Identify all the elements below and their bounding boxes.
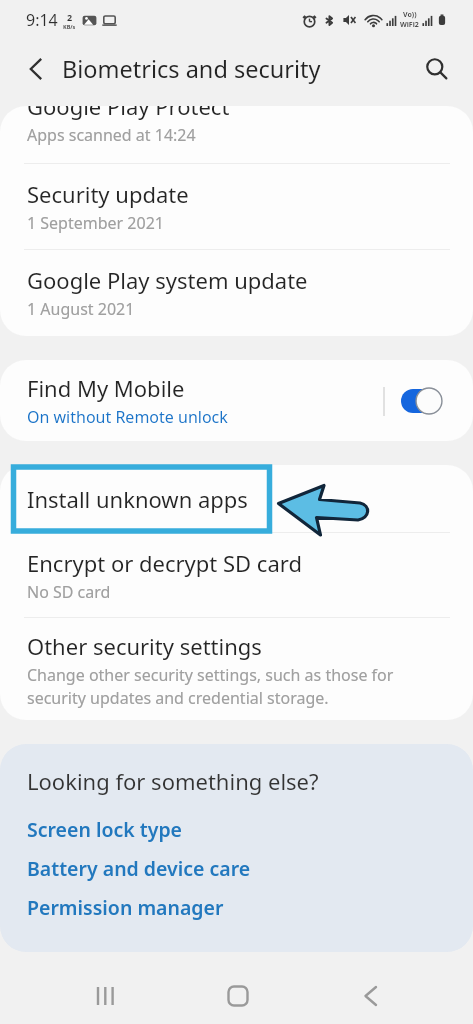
button[interactable]: Home: [205, 963, 270, 1024]
button[interactable]: Install unknown apps: [0, 465, 473, 532]
button[interactable]: Find My Mobile switch: [383, 378, 441, 424]
staticText: Encrypt or decrypt SD card: [27, 548, 302, 578]
staticText: 2: [67, 11, 73, 23]
button[interactable]: Battery and device care: [0, 849, 473, 888]
staticText: Security update: [27, 179, 189, 209]
staticText: Google Play system update: [27, 265, 308, 295]
staticText: KB/s: [63, 23, 76, 30]
button[interactable]: Google Play Protect: [0, 106, 473, 161]
button[interactable]: Search: [417, 49, 457, 89]
staticText: 1 August 2021: [27, 298, 135, 320]
staticText: Google Play Protect: [27, 106, 230, 121]
staticText: Change other security settings, such as …: [27, 664, 403, 709]
button[interactable]: Back: [338, 963, 403, 1024]
staticText: No SD card: [27, 581, 111, 603]
button[interactable]: Permission manager: [0, 888, 473, 927]
staticText: Biometrics and security: [62, 53, 321, 85]
staticText: 9:14: [26, 9, 58, 31]
staticText: 1 September 2021: [27, 212, 164, 234]
staticText: Vo)): [403, 10, 417, 20]
staticText: Other security settings: [27, 631, 262, 661]
button[interactable]: Google Play system update: [0, 248, 473, 336]
staticText: On without Remote unlock: [27, 406, 228, 428]
button[interactable]: Screen lock type: [0, 810, 473, 849]
staticText: Screen lock type: [27, 816, 183, 843]
staticText: Permission manager: [27, 894, 224, 921]
staticText: Looking for something else?: [27, 766, 319, 796]
staticText: Battery and device care: [27, 855, 251, 882]
staticText: Apps scanned at 14:24: [27, 124, 196, 146]
staticText: Find My Mobile: [27, 373, 185, 403]
button[interactable]: Security update: [0, 164, 473, 249]
button[interactable]: Other security settings: [0, 618, 473, 720]
staticText: WiFi2: [400, 20, 419, 30]
button[interactable]: Find My Mobile: [0, 360, 473, 441]
button[interactable]: Encrypt or decrypt SD card: [0, 533, 473, 617]
button[interactable]: Recent apps: [73, 963, 138, 1024]
staticText: Install unknown apps: [27, 484, 248, 514]
button[interactable]: Navigate up: [18, 51, 54, 87]
